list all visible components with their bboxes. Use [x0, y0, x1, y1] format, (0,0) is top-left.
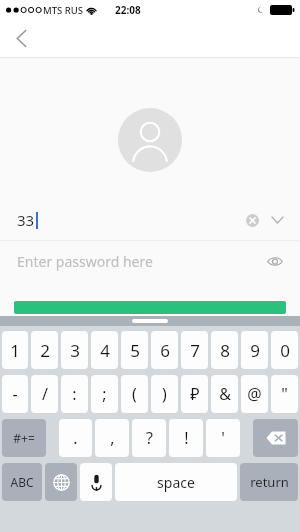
button[interactable]: Clear [242, 210, 262, 230]
button[interactable]: Avatar [118, 108, 182, 172]
staticText: & [219, 383, 231, 405]
staticText: Enter password here [17, 252, 153, 271]
staticText: 33 [17, 210, 35, 230]
staticText: 5 [130, 339, 140, 362]
staticText: 22:08 [115, 3, 141, 17]
button[interactable]: : [61, 375, 88, 413]
button[interactable]: #+= [2, 419, 46, 457]
staticText: 4 [100, 339, 110, 362]
staticText: 7 [190, 339, 200, 362]
button[interactable]: 7 [181, 331, 208, 369]
staticText: 6 [160, 339, 170, 362]
button[interactable]: ABC [2, 463, 42, 501]
staticText: " [281, 383, 288, 405]
staticText: ' [221, 427, 225, 449]
staticText: space [157, 473, 195, 492]
staticText: #+= [13, 430, 35, 446]
staticText: ₽ [190, 383, 200, 405]
button[interactable]: Sign in [14, 301, 286, 314]
button[interactable]: ? [132, 419, 166, 457]
button[interactable]: space [115, 463, 237, 501]
button[interactable]: @ [241, 375, 268, 413]
button[interactable]: Show suggestions [266, 209, 288, 231]
button[interactable]: - [2, 375, 28, 413]
staticText: ABC [10, 474, 34, 490]
button[interactable]: 6 [151, 331, 178, 369]
button[interactable]: Change keyboard [45, 463, 77, 501]
button[interactable]: & [211, 375, 238, 413]
staticText: ! [184, 427, 189, 449]
button[interactable]: Hide keyboard [132, 319, 168, 323]
button[interactable]: 2 [31, 331, 58, 369]
button[interactable]: . [59, 419, 92, 457]
button[interactable]: ₽ [181, 375, 208, 413]
button[interactable]: 3 [61, 331, 88, 369]
staticText: : [72, 383, 77, 405]
staticText: ; [102, 383, 107, 405]
staticText: ) [162, 383, 167, 405]
staticText: return [250, 473, 289, 491]
staticText: ( [132, 383, 137, 405]
staticText: ? [146, 427, 153, 449]
staticText: 9 [250, 339, 260, 362]
button[interactable]: / [31, 375, 58, 413]
staticText: @ [247, 383, 262, 405]
button[interactable]: 5 [121, 331, 148, 369]
staticText: - [12, 383, 18, 405]
button[interactable]: " [271, 375, 298, 413]
staticText: 1 [10, 339, 20, 362]
button[interactable]: 4 [91, 331, 118, 369]
button[interactable]: 1 [2, 331, 28, 369]
button[interactable]: ' [206, 419, 240, 457]
staticText: / [42, 383, 48, 405]
button[interactable]: 8 [211, 331, 238, 369]
staticText: 2 [40, 339, 50, 362]
staticText: , [110, 427, 115, 449]
button[interactable]: , [95, 419, 129, 457]
staticText: 0 [280, 339, 290, 362]
staticText: 3 [70, 339, 80, 362]
button[interactable]: Backspace [253, 419, 298, 457]
button[interactable]: 33 [0, 200, 300, 240]
button[interactable]: Enter password here [0, 241, 300, 281]
button[interactable]: 0 [271, 331, 298, 369]
button[interactable]: 9 [241, 331, 268, 369]
button[interactable]: Dictate [80, 463, 112, 501]
staticText: . [73, 427, 78, 449]
button[interactable]: Show password [264, 250, 286, 272]
staticText: 8 [220, 339, 230, 362]
button[interactable]: Back [0, 20, 42, 57]
button[interactable]: ) [151, 375, 178, 413]
button[interactable]: return [240, 463, 298, 501]
button[interactable]: ( [121, 375, 148, 413]
staticText: MTS RUS [43, 4, 83, 17]
button[interactable]: ; [91, 375, 118, 413]
button[interactable]: ! [169, 419, 203, 457]
